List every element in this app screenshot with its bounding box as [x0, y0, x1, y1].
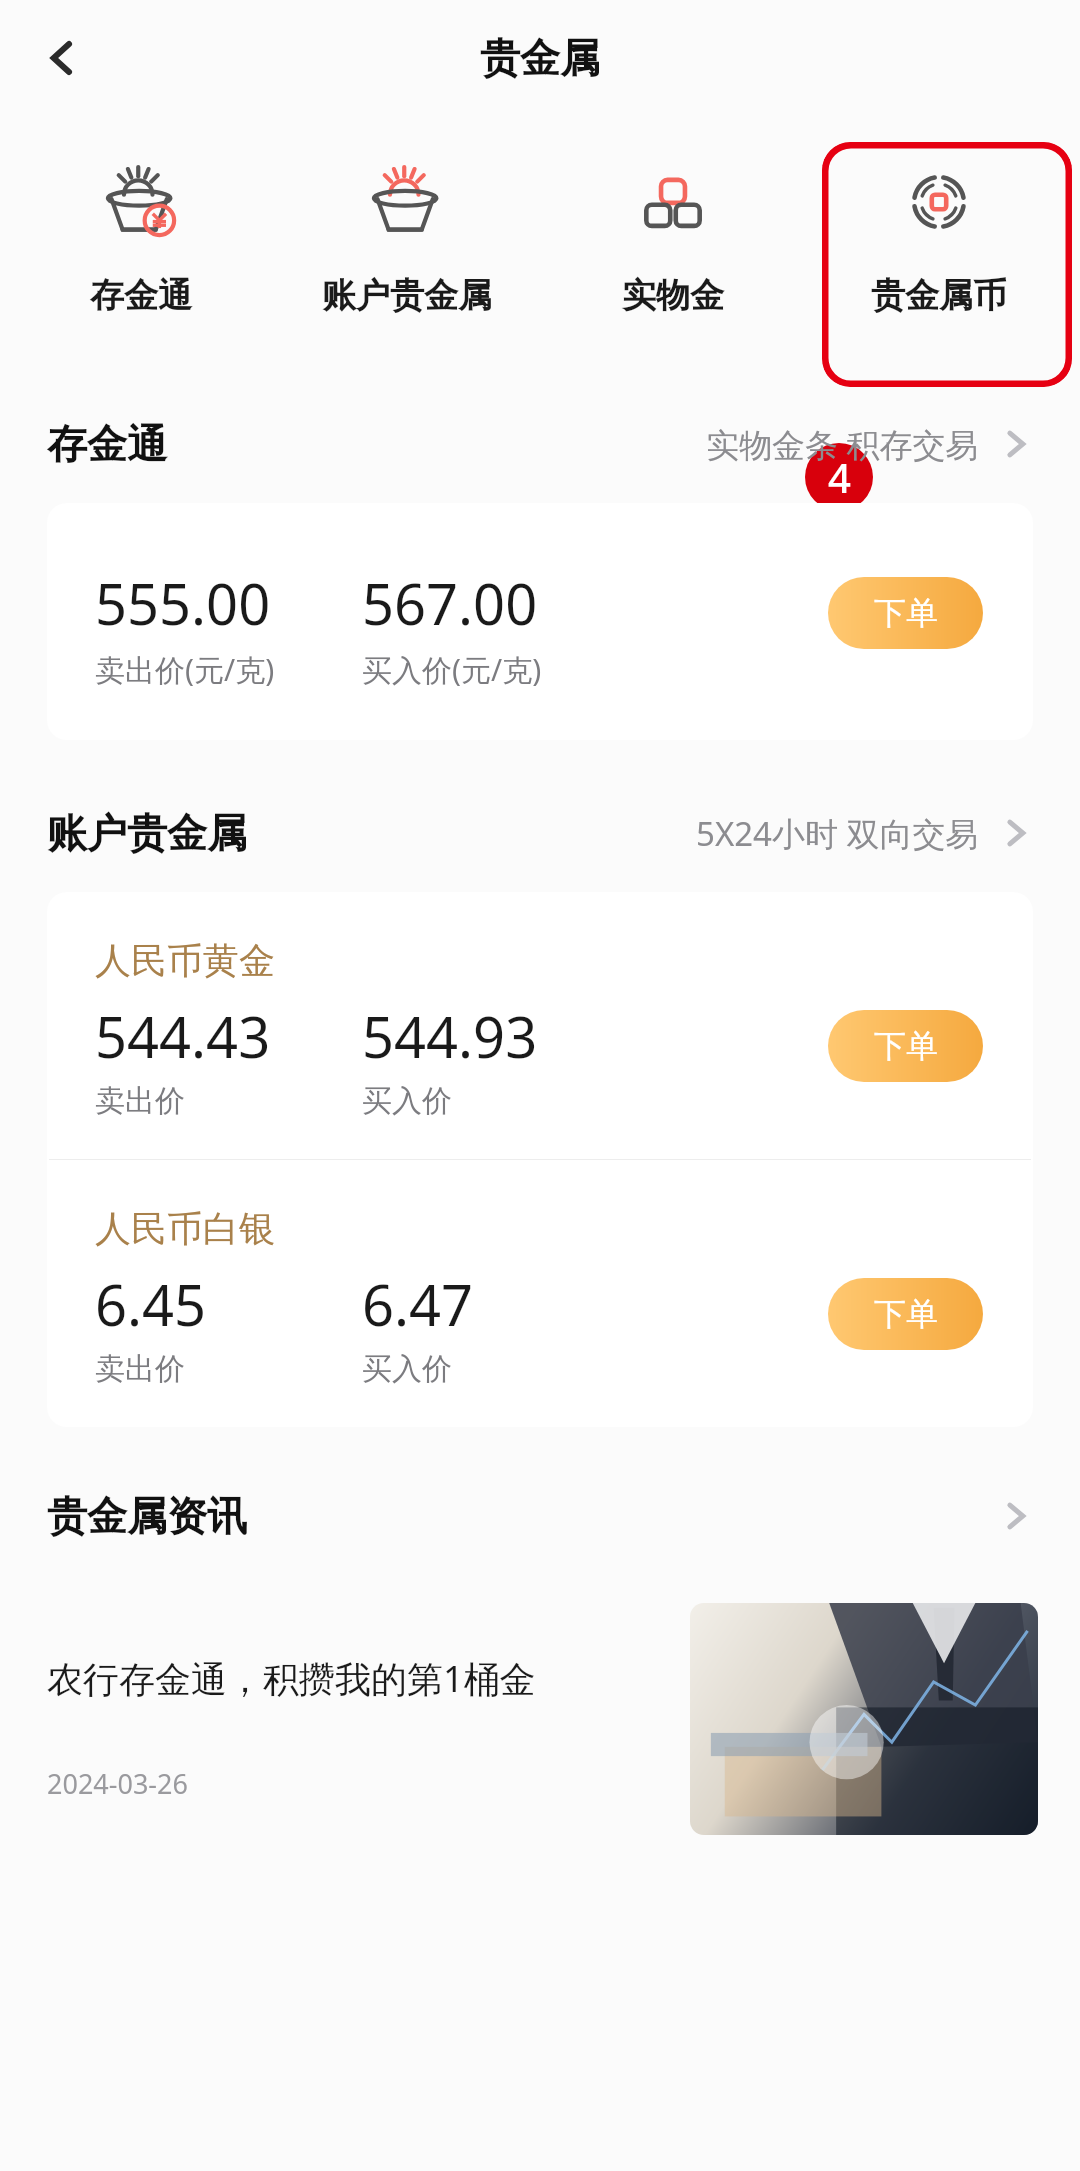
staticText: 下单 [874, 1294, 938, 1334]
staticText: 人民币白银 [95, 1206, 275, 1251]
button[interactable]: 农行存金通，积攒我的第1桶金 [47, 1603, 1038, 1853]
button[interactable]: 下单 [828, 577, 983, 649]
button[interactable]: 555.00 [47, 503, 1033, 740]
staticText: 2024-03-26 [47, 1765, 188, 1802]
button[interactable]: 存金通 [16, 134, 266, 317]
staticText: 下单 [874, 593, 938, 633]
staticText: 农行存金通，积攒我的第1桶金 [47, 1654, 536, 1703]
button[interactable]: 人民币白银 [47, 1160, 1033, 1427]
button[interactable]: 存金通 [47, 411, 1033, 477]
staticText: 卖出价 [95, 1082, 185, 1120]
staticText: 卖出价(元/克) [95, 649, 275, 690]
staticText: 存金通 [90, 274, 192, 317]
button[interactable]: 账户贵金属 [282, 134, 532, 317]
staticText: 实物金 [622, 274, 724, 317]
button[interactable]: Back [22, 18, 102, 98]
button[interactable]: 账户贵金属 [47, 800, 1033, 866]
staticText: 买入价 [362, 1350, 452, 1388]
staticText: 买入价 [362, 1082, 452, 1120]
staticText: 6.47 [362, 1266, 474, 1342]
staticText: 下单 [874, 1026, 938, 1066]
staticText: 555.00 [95, 565, 271, 641]
staticText: 544.43 [95, 998, 271, 1074]
staticText: 贵金属币 [871, 274, 1007, 317]
staticText: 6.45 [95, 1266, 207, 1342]
staticText: 实物金条 积存交易 [706, 422, 979, 467]
button[interactable]: 贵金属资讯 [47, 1481, 1033, 1551]
staticText: 544.93 [362, 998, 538, 1074]
staticText: 存金通 [47, 419, 167, 469]
button[interactable]: 下单 [828, 1010, 983, 1082]
staticText: 4 [828, 450, 851, 504]
staticText: 贵金属 [480, 33, 600, 83]
button[interactable]: 下单 [828, 1278, 983, 1350]
staticText: 人民币黄金 [95, 938, 275, 983]
button[interactable]: 人民币黄金 [47, 892, 1033, 1159]
staticText: 买入价(元/克) [362, 649, 542, 690]
button[interactable]: 实物金 [548, 134, 798, 317]
staticText: 567.00 [362, 565, 538, 641]
staticText: 卖出价 [95, 1350, 185, 1388]
staticText: 贵金属资讯 [47, 1491, 247, 1541]
staticText: 账户贵金属 [47, 808, 247, 858]
button[interactable]: 贵金属币 [814, 134, 1064, 317]
staticText: 账户贵金属 [322, 274, 492, 317]
staticText: 5X24小时 双向交易 [696, 811, 979, 856]
